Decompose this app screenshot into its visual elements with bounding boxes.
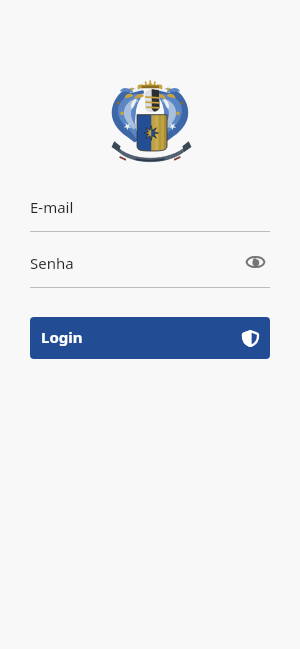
button[interactable]: Mostrar senha xyxy=(241,248,269,276)
staticText: Login xyxy=(41,327,83,347)
staticText: E-mail xyxy=(30,197,74,217)
button[interactable]: Login xyxy=(30,317,270,359)
staticText: Senha xyxy=(30,253,74,273)
